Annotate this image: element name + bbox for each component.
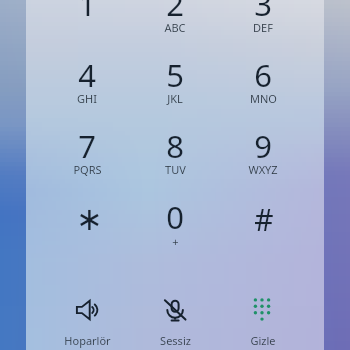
button[interactable]: Speaker bbox=[43, 292, 131, 350]
staticText: TUV bbox=[165, 162, 186, 177]
staticText: 4 bbox=[78, 54, 96, 96]
other: Hide keypad bbox=[251, 299, 275, 322]
staticText: 8 bbox=[166, 125, 184, 167]
button[interactable]: 7 bbox=[43, 116, 131, 180]
button[interactable]: 5 bbox=[131, 45, 219, 109]
button[interactable]: 6 bbox=[219, 45, 307, 109]
other: Mute bbox=[163, 299, 187, 322]
staticText: 7 bbox=[78, 125, 96, 167]
staticText: 3 bbox=[254, 0, 272, 25]
other: Speaker bbox=[75, 299, 99, 322]
staticText: # bbox=[254, 199, 274, 240]
button[interactable]: 8 bbox=[131, 116, 219, 180]
staticText: ∗ bbox=[76, 200, 103, 237]
staticText: Sessiz bbox=[160, 333, 191, 348]
staticText: 5 bbox=[166, 54, 184, 96]
staticText: GHI bbox=[77, 91, 97, 106]
button[interactable]: 2 bbox=[131, 0, 219, 38]
staticText: PQRS bbox=[73, 162, 102, 177]
button[interactable]: ∗ bbox=[43, 187, 131, 251]
button[interactable]: 9 bbox=[219, 116, 307, 180]
staticText: JKL bbox=[167, 91, 183, 106]
staticText: 0 bbox=[166, 196, 184, 238]
staticText: + bbox=[172, 234, 179, 249]
staticText: 1 bbox=[78, 0, 96, 25]
staticText: DEF bbox=[253, 20, 273, 35]
button[interactable]: 0 bbox=[131, 187, 219, 251]
button[interactable]: 1 bbox=[43, 0, 131, 38]
staticText: WXYZ bbox=[248, 162, 278, 177]
staticText: MNO bbox=[250, 91, 277, 106]
staticText: Hoparlör bbox=[64, 333, 111, 348]
staticText: 2 bbox=[166, 0, 184, 25]
staticText: Gizle bbox=[250, 333, 276, 348]
staticText: ABC bbox=[164, 20, 186, 35]
button[interactable]: Hide keypad bbox=[219, 292, 307, 350]
button[interactable]: 3 bbox=[219, 0, 307, 38]
staticText: 6 bbox=[254, 54, 272, 96]
button[interactable]: Mute bbox=[131, 292, 219, 350]
staticText: 9 bbox=[254, 125, 272, 167]
button[interactable]: # bbox=[219, 187, 307, 251]
button[interactable]: 4 bbox=[43, 45, 131, 109]
